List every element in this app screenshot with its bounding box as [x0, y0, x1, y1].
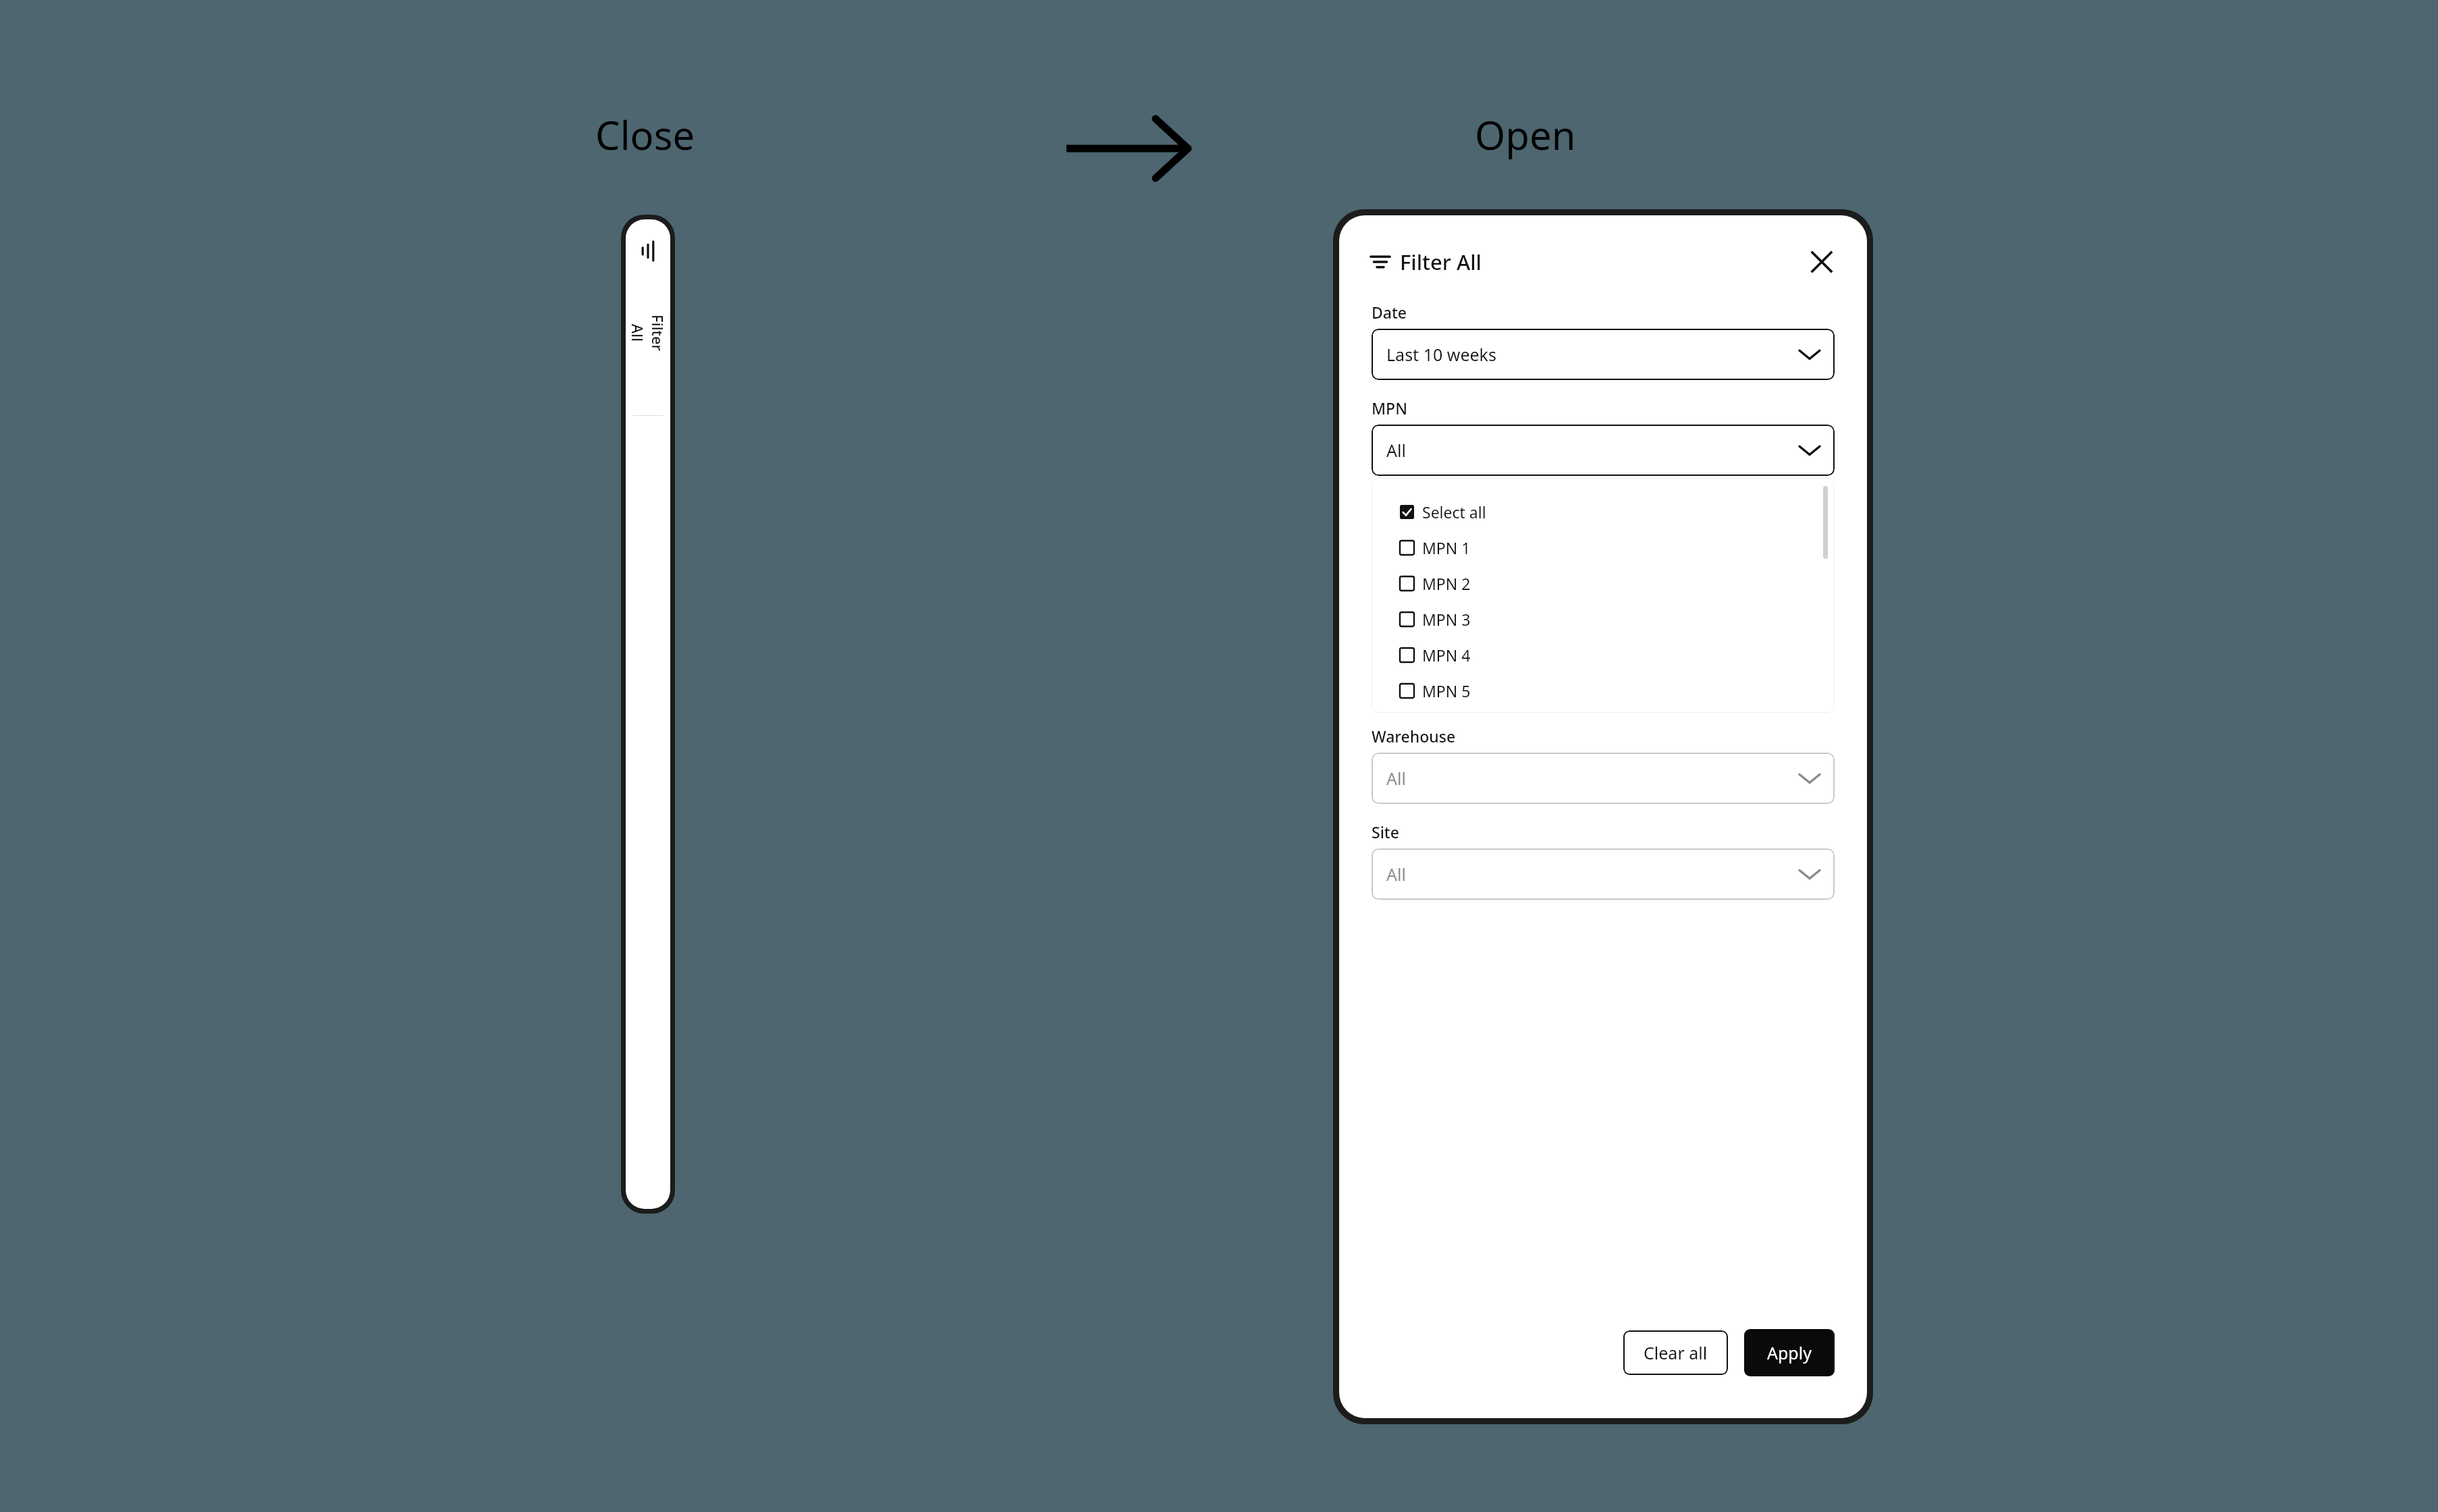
button[interactable]: MPN 3: [1372, 601, 1835, 637]
button[interactable]: Select all: [1372, 494, 1835, 530]
staticText: MPN: [1372, 398, 1407, 418]
staticText: MPN 3: [1422, 609, 1471, 630]
button[interactable]: Close: [1805, 245, 1839, 279]
button[interactable]: All: [1372, 425, 1835, 476]
button[interactable]: Filter All: [626, 219, 670, 1209]
button[interactable]: MPN 5: [1372, 673, 1835, 709]
button[interactable]: Apply: [1744, 1329, 1835, 1376]
staticText: MPN 2: [1422, 573, 1471, 594]
staticText: Open: [1475, 108, 1576, 161]
staticText: MPN 5: [1422, 680, 1471, 701]
staticText: Site: [1372, 821, 1399, 842]
staticText: Filter All: [1400, 248, 1482, 276]
staticText: Last 10 weeks: [1386, 343, 1496, 366]
staticText: All: [1386, 767, 1406, 790]
button[interactable]: All: [1372, 753, 1835, 804]
staticText: Warehouse: [1372, 726, 1456, 747]
staticText: Clear all: [1644, 1341, 1708, 1364]
staticText: Close: [595, 108, 695, 161]
button[interactable]: MPN 4: [1372, 637, 1835, 673]
button[interactable]: MPN 1: [1372, 530, 1835, 566]
button[interactable]: Clear all: [1623, 1330, 1728, 1375]
button[interactable]: Last 10 weeks: [1372, 329, 1835, 380]
staticText: Select all: [1422, 502, 1486, 522]
button[interactable]: All: [1372, 848, 1835, 900]
staticText: Date: [1372, 302, 1407, 323]
staticText: MPN 1: [1422, 537, 1471, 558]
staticText: Filter All: [628, 310, 668, 355]
staticText: All: [1386, 439, 1406, 462]
staticText: All: [1386, 863, 1406, 886]
button[interactable]: MPN 2: [1372, 566, 1835, 601]
staticText: MPN 4: [1422, 645, 1471, 666]
staticText: Apply: [1767, 1341, 1812, 1364]
